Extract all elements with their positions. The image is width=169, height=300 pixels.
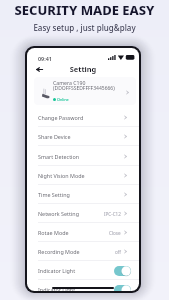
staticText: Indicator Light: [38, 286, 76, 291]
button[interactable]: Network Setting: [27, 204, 139, 223]
staticText: Change Password: [38, 114, 84, 121]
staticText: Rotae Mode: [38, 229, 69, 236]
button[interactable]: Indicator Light: [27, 280, 139, 291]
staticText: IPC-C12: [104, 211, 121, 217]
staticText: 09:41: [38, 55, 52, 62]
staticText: Time Setting: [38, 191, 70, 198]
button[interactable]: Indicator Light: [27, 261, 139, 280]
staticText: Recording Mode: [38, 248, 80, 255]
button[interactable]: Night Vision Mode: [27, 166, 139, 185]
staticText: Online: [57, 97, 69, 102]
staticText: Share Device: [38, 133, 71, 140]
staticText: Smart Detection: [38, 153, 80, 160]
staticText: Indicator Light: [38, 267, 76, 274]
button[interactable]: Rotae Mode: [27, 223, 139, 242]
button[interactable]: Share Device: [27, 127, 139, 146]
button[interactable]: Change Password: [27, 108, 139, 127]
button[interactable]: Time Setting: [27, 185, 139, 204]
button[interactable]: Camera C190: [34, 77, 136, 105]
staticText: Network Setting: [38, 210, 80, 217]
staticText: Setting: [27, 64, 139, 74]
button[interactable]: Back: [33, 63, 45, 75]
button[interactable]: Smart Detection: [27, 147, 139, 166]
staticText: Camera C190: [53, 79, 86, 86]
staticText: Easy setup , just plug&play: [0, 22, 169, 33]
staticText: (DDOFFSSEDFFFF3445666): [53, 85, 115, 92]
button[interactable]: Toggle indicator light: [114, 285, 131, 291]
staticText: SECURITY MADE EASY: [0, 1, 169, 19]
staticText: Close: [109, 230, 121, 236]
button[interactable]: Recording Mode: [27, 242, 139, 261]
button[interactable]: Toggle indicator light: [114, 266, 131, 276]
staticText: Night Vision Mode: [38, 172, 85, 179]
staticText: off: [115, 249, 121, 255]
